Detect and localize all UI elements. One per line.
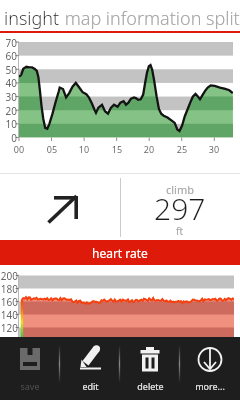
staticText: 70 [1, 36, 17, 50]
button[interactable]: save [0, 337, 60, 400]
staticText: 40 [1, 76, 17, 90]
staticText: more... [195, 380, 225, 392]
staticText: 00 [7, 143, 31, 155]
staticText: heart rate [92, 245, 148, 261]
staticText: 20 [137, 143, 161, 155]
staticText: 05 [40, 143, 64, 155]
staticText: 160 [0, 295, 18, 309]
staticText: 10 [1, 117, 17, 131]
staticText: edit [82, 380, 99, 392]
staticText: save [20, 380, 40, 392]
staticText: 200 [0, 269, 18, 283]
staticText: delete [137, 380, 164, 392]
staticText: 50 [1, 63, 17, 77]
staticText: 120 [0, 321, 18, 335]
staticText: 180 [0, 282, 18, 296]
staticText: 0 [1, 131, 17, 145]
staticText: 140 [0, 308, 18, 322]
button[interactable]: more... [180, 337, 240, 400]
staticText: insight [4, 6, 60, 31]
button[interactable]: heart rate [0, 240, 240, 265]
staticText: 60 [1, 49, 17, 63]
staticText: climb [166, 182, 195, 197]
staticText: 297 [154, 188, 206, 229]
staticText: 30 [202, 143, 226, 155]
button[interactable]: delete [120, 337, 180, 400]
staticText: map information split [60, 6, 240, 31]
staticText: 20 [1, 104, 17, 118]
staticText: ft [176, 224, 184, 238]
staticText: 25 [170, 143, 194, 155]
staticText: 30 [1, 90, 17, 104]
staticText: 10 [72, 143, 96, 155]
staticText: 15 [105, 143, 129, 155]
button[interactable]: edit [60, 337, 120, 400]
